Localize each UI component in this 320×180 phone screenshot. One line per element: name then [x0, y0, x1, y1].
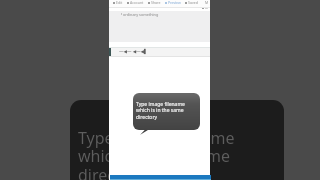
button[interactable]: Share: [146, 0, 163, 5]
button[interactable]: Account: [125, 0, 146, 5]
button[interactable]: Edit: [111, 0, 125, 5]
staticText: ordinary something: [123, 12, 159, 17]
staticText: Preview: [168, 0, 181, 5]
staticText: which is in the same: [78, 145, 230, 167]
staticText: Type image filename: [78, 127, 235, 149]
staticText: Edit: [116, 0, 123, 5]
button[interactable]: Saved: [183, 0, 200, 5]
button[interactable]: More: [200, 0, 212, 15]
staticText: Type image filename: [136, 101, 185, 108]
staticText: directory: [136, 114, 157, 121]
staticText: More: [205, 0, 210, 15]
staticText: directory: [78, 164, 146, 180]
button[interactable]: Preview: [163, 0, 183, 5]
staticText: Saved: [188, 0, 198, 5]
staticText: which is in the same: [136, 107, 184, 114]
staticText: —◀— ◀—◀▌: [119, 48, 148, 54]
staticText: Share: [151, 0, 161, 5]
staticText: Account: [130, 0, 144, 5]
